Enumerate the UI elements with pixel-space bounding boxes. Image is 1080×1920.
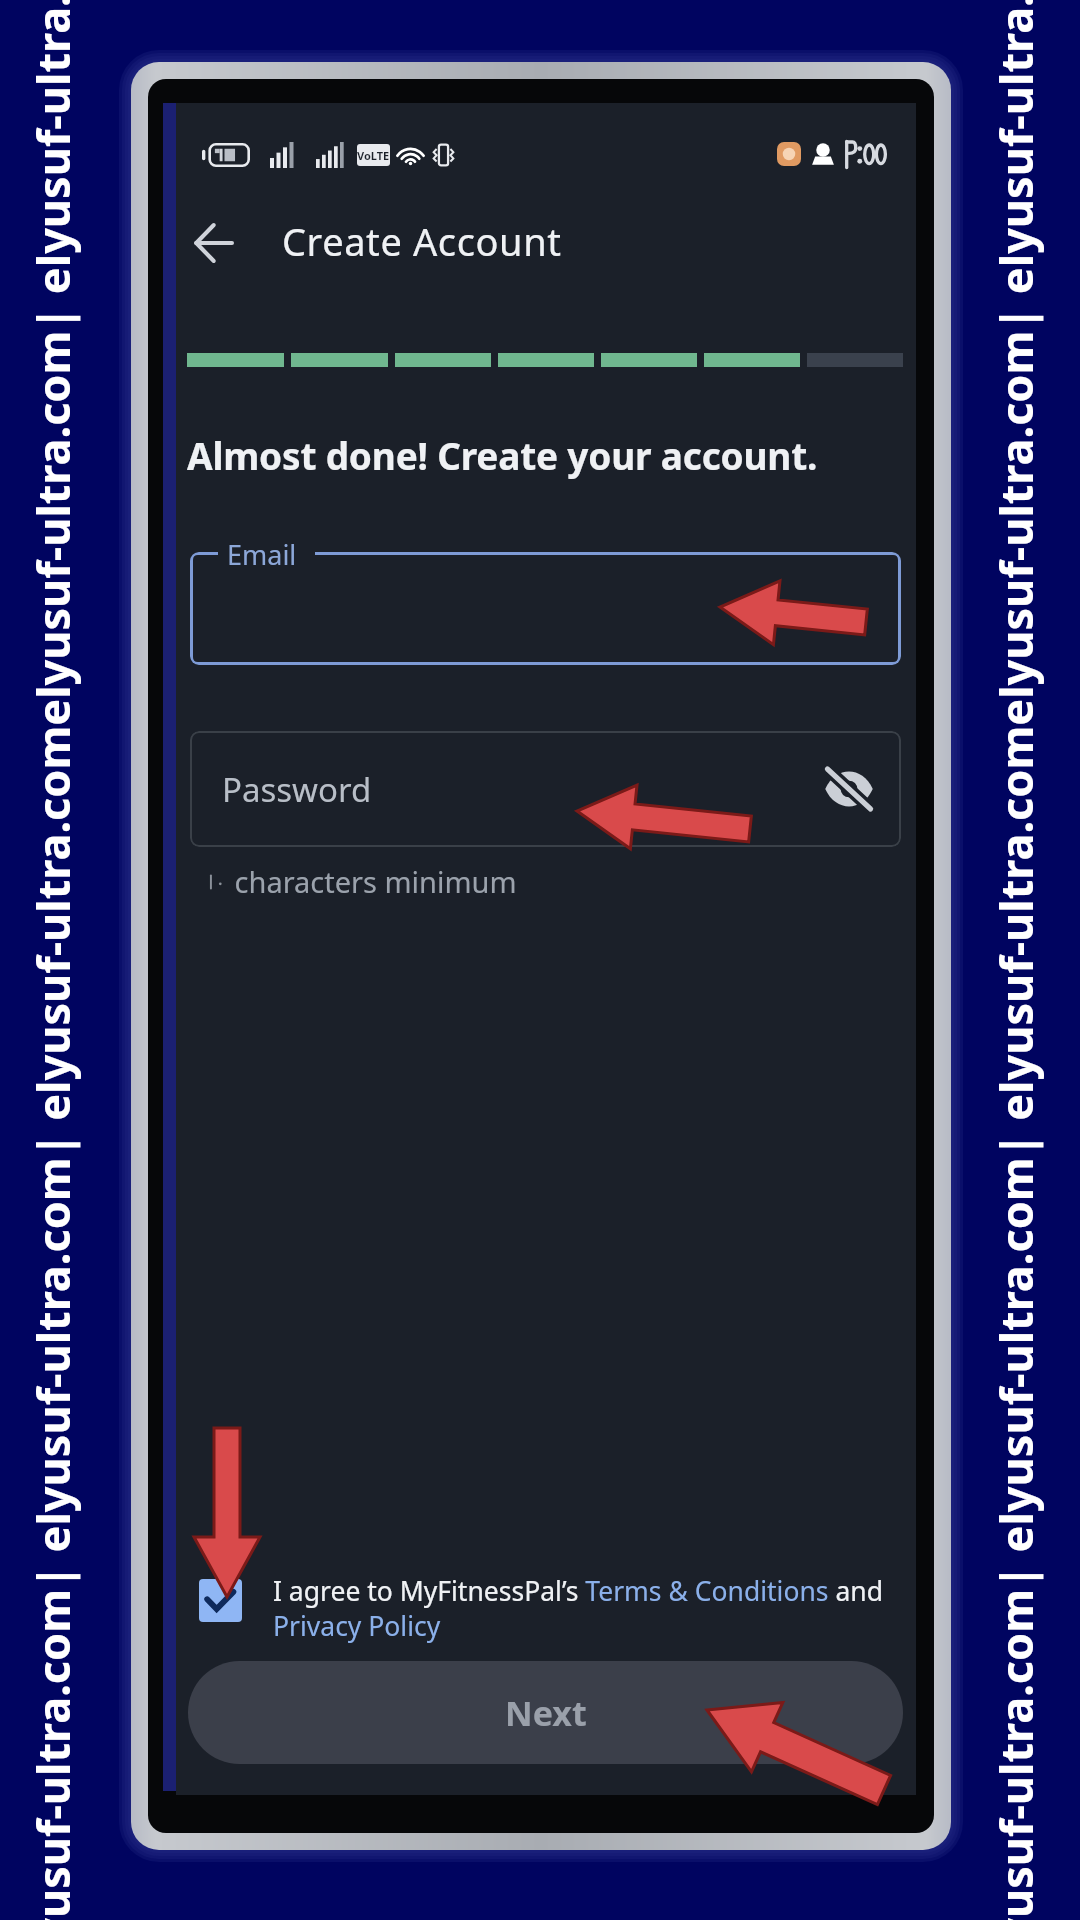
staticText: Next — [505, 1690, 587, 1736]
button[interactable]: Back — [176, 206, 250, 280]
staticText: ultra.com| elyusuf-ultra.com| elyusuf-ul… — [22, 0, 83, 1920]
staticText: characters minimum — [227, 862, 517, 901]
button[interactable] — [190, 552, 901, 665]
staticText: I agree to MyFitnessPal’s Terms & Condit… — [273, 1573, 914, 1643]
button[interactable]: Show password — [819, 759, 879, 819]
button[interactable]: Password — [190, 731, 901, 847]
staticText: Create Account — [282, 215, 562, 267]
staticText: Almost done! Create your account. — [187, 430, 818, 480]
staticText: Password — [222, 767, 372, 812]
staticText: Email — [227, 536, 297, 573]
staticText: ultra.com| elyusuf-ultra.com| elyusuf-ul… — [985, 0, 1046, 1920]
button[interactable]: I agree to MyFitnessPal’s Terms & Condit… — [199, 1573, 914, 1643]
button[interactable]: Next — [188, 1661, 903, 1764]
staticText: VoLTE — [357, 148, 390, 163]
